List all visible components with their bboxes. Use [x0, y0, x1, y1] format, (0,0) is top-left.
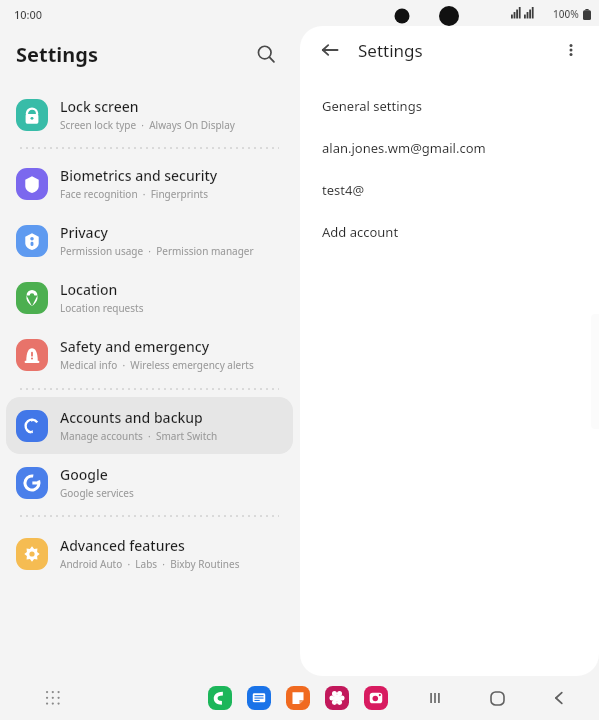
button[interactable]: Gallery [325, 686, 349, 710]
staticText: Accounts and backup [60, 408, 203, 427]
staticText: Lock screen [60, 97, 139, 116]
staticText: Google services [60, 486, 134, 500]
staticText: Settings [16, 41, 249, 68]
button[interactable]: test4@ [300, 169, 599, 211]
other: Messages [247, 686, 271, 710]
staticText: Android Auto · Labs · Bixby Routines [60, 557, 240, 571]
button[interactable]: Back [314, 34, 346, 66]
button[interactable]: Google [6, 454, 293, 511]
staticText: Safety and emergency [60, 337, 210, 356]
button[interactable]: Home [483, 684, 511, 712]
staticText: Privacy [60, 223, 108, 242]
button[interactable]: Recents [421, 684, 449, 712]
other: Camera [364, 686, 388, 710]
button[interactable]: Accounts and backup [6, 397, 293, 454]
staticText: Manage accounts · Smart Switch [60, 429, 218, 443]
button[interactable]: Lock screen [6, 86, 293, 143]
button[interactable]: Notes [286, 686, 310, 710]
button[interactable]: Add account [300, 211, 599, 253]
staticText: Face recognition · Fingerprints [60, 187, 208, 201]
other: Phone [208, 686, 232, 710]
staticText: Google [60, 465, 108, 484]
button[interactable]: Apps [38, 683, 68, 713]
staticText: alan.jones.wm@gmail.com [322, 139, 486, 157]
staticText: Permission usage · Permission manager [60, 244, 254, 258]
staticText: Biometrics and security [60, 166, 218, 185]
button[interactable]: Phone [208, 686, 232, 710]
button[interactable]: Advanced features [6, 525, 293, 582]
button[interactable]: General settings [300, 85, 599, 127]
staticText: General settings [322, 97, 422, 115]
staticText: 100% [553, 7, 579, 21]
button[interactable]: More options [555, 34, 587, 66]
staticText: Advanced features [60, 536, 185, 555]
staticText: Location [60, 280, 118, 299]
button[interactable]: Location [6, 269, 293, 326]
staticText: Medical info · Wireless emergency alerts [60, 358, 254, 372]
staticText: Location requests [60, 301, 144, 315]
staticText: test4@ [322, 181, 365, 199]
button[interactable]: Messages [247, 686, 271, 710]
other: Notes [286, 686, 310, 710]
other: Gallery [325, 686, 349, 710]
button[interactable]: Privacy [6, 212, 293, 269]
staticText: 10:00 [14, 7, 43, 22]
button[interactable]: Biometrics and security [6, 155, 293, 212]
button[interactable]: Camera [364, 686, 388, 710]
staticText: Screen lock type · Always On Display [60, 118, 235, 132]
button[interactable]: Safety and emergency [6, 326, 293, 383]
button[interactable]: Back [545, 684, 573, 712]
button[interactable]: alan.jones.wm@gmail.com [300, 127, 599, 169]
staticText: Settings [358, 39, 555, 62]
staticText: Add account [322, 223, 399, 241]
button[interactable]: Search [249, 37, 283, 71]
